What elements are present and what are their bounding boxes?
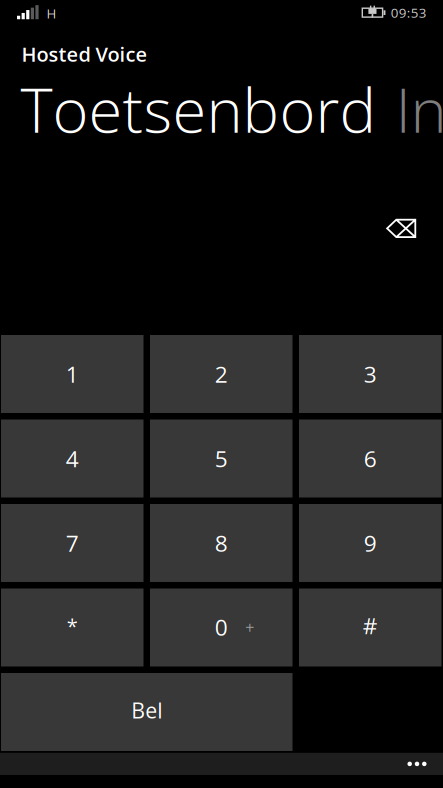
staticText: 5 — [215, 443, 228, 474]
button[interactable]: # — [299, 588, 441, 666]
button[interactable]: 8 — [150, 504, 292, 582]
button[interactable]: 3 — [299, 335, 441, 413]
staticText: + — [245, 617, 254, 638]
button[interactable]: 1 — [1, 335, 143, 413]
button[interactable]: Bel — [1, 673, 292, 751]
staticText: 7 — [66, 528, 79, 558]
button[interactable]: 5 — [150, 419, 292, 497]
staticText: 4 — [66, 443, 79, 474]
button[interactable]: 9 — [299, 504, 441, 582]
button[interactable]: 0 — [150, 588, 292, 666]
button[interactable]: 4 — [1, 419, 143, 497]
staticText: 9 — [364, 528, 377, 558]
staticText: 8 — [215, 528, 228, 558]
staticText: 2 — [215, 359, 228, 389]
staticText: 0 — [215, 612, 228, 642]
button[interactable]: * — [1, 588, 143, 666]
staticText: 1 — [66, 359, 79, 389]
button[interactable]: 7 — [1, 504, 143, 582]
staticText: 09:53 — [391, 3, 427, 22]
staticText: Toetsenbord — [20, 67, 376, 151]
staticText: In — [395, 67, 443, 151]
button[interactable]: 2 — [150, 335, 292, 413]
staticText: 6 — [364, 443, 377, 474]
staticText: Bel — [131, 696, 162, 725]
staticText: 3 — [364, 359, 377, 389]
staticText: # — [363, 610, 378, 641]
button[interactable]: 6 — [299, 419, 441, 497]
staticText: * — [67, 612, 78, 639]
staticText: H — [47, 4, 57, 22]
staticText: Hosted Voice — [21, 40, 147, 68]
button[interactable]: Backspace — [366, 201, 436, 256]
button[interactable]: More options — [0, 753, 443, 775]
